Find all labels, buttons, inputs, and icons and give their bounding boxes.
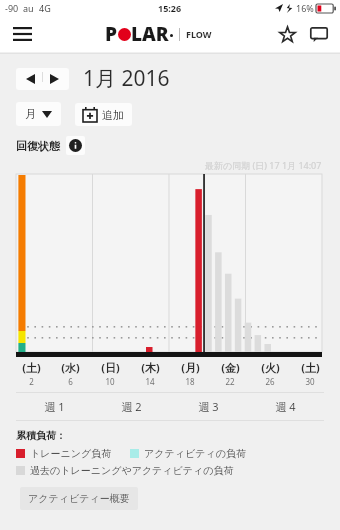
staticText: 週 3 <box>198 399 219 414</box>
staticText: 18 <box>185 376 195 387</box>
staticText: 週 4 <box>275 399 296 414</box>
staticText: P <box>105 21 118 47</box>
staticText: (火) <box>261 360 280 375</box>
staticText: 累積負荷： <box>16 429 66 442</box>
staticText: (土) <box>301 360 320 375</box>
staticText: (土) <box>22 360 41 375</box>
staticText: (日) <box>101 360 120 375</box>
staticText: 追加 <box>102 108 124 122</box>
staticText: 4G <box>39 2 51 14</box>
staticText: 26 <box>265 376 275 387</box>
button[interactable]: 月 <box>16 102 61 126</box>
button[interactable]: Previous month <box>23 72 38 86</box>
staticText: LAR <box>131 21 169 47</box>
button[interactable]: アクティビティー概要 <box>20 487 138 510</box>
staticText: (月) <box>181 360 200 375</box>
button[interactable]: 週 3 <box>170 399 247 414</box>
staticText: トレーニング負荷 <box>30 447 112 460</box>
staticText: FLOW <box>186 28 212 40</box>
staticText: -90 <box>5 2 19 14</box>
staticText: 過去のトレーニングやアクティビティの負荷 <box>30 464 234 477</box>
staticText: 6 <box>68 376 73 387</box>
staticText: 月 <box>25 107 36 121</box>
staticText: (水) <box>61 360 80 375</box>
button[interactable]: Next month <box>47 72 62 86</box>
staticText: 週 1 <box>44 399 65 414</box>
staticText: 回復状態 <box>16 139 60 153</box>
staticText: 22 <box>225 376 235 387</box>
button[interactable]: 追加 <box>75 103 132 126</box>
button[interactable]: 週 2 <box>93 399 170 414</box>
staticText: (木) <box>141 360 160 375</box>
staticText: アクティビティの負荷 <box>144 447 246 460</box>
staticText: 2 <box>29 376 34 387</box>
button[interactable]: Info <box>66 136 85 155</box>
staticText: (金) <box>221 360 240 375</box>
staticText: 15:26 <box>158 2 182 14</box>
staticText: au <box>23 2 34 14</box>
button[interactable]: Menu <box>8 20 36 48</box>
staticText: 14 <box>145 376 155 387</box>
staticText: 30 <box>305 376 315 387</box>
button[interactable]: Favorites <box>274 21 300 47</box>
button[interactable]: 週 4 <box>247 399 324 414</box>
staticText: 1月 2016 <box>83 64 170 93</box>
button[interactable]: Messages <box>306 21 332 47</box>
staticText: アクティビティー概要 <box>28 492 130 505</box>
staticText: 16% <box>296 2 314 14</box>
button[interactable]: 週 1 <box>16 399 93 414</box>
staticText: 10 <box>105 376 115 387</box>
staticText: 最新の同期 (日) 17 1月 14:07 <box>205 159 322 171</box>
staticText: 週 2 <box>121 399 142 414</box>
